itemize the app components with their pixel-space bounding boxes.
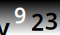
staticText: 9 [14,1,26,29]
staticText: 2 [31,7,44,35]
staticText: 3 [45,6,58,35]
staticText: y [0,10,10,35]
